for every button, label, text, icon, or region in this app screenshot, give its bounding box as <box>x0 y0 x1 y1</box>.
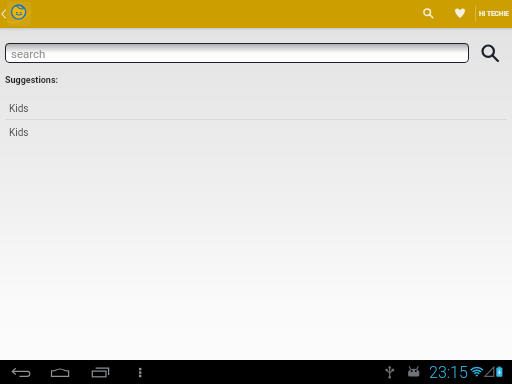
button[interactable]: Home <box>7 2 31 26</box>
staticText: 23:15 <box>429 363 468 382</box>
button[interactable]: HI TECHIE <box>478 0 510 28</box>
button[interactable]: search <box>5 43 469 63</box>
button[interactable]: Home <box>47 360 75 384</box>
staticText: Kids <box>9 127 29 139</box>
button[interactable]: Favourites <box>448 0 471 28</box>
button[interactable]: Navigate up <box>0 0 7 28</box>
button[interactable]: Search <box>415 0 439 28</box>
button[interactable]: Recent apps <box>86 360 114 384</box>
staticText: HI TECHIE <box>479 10 510 18</box>
button[interactable]: More options <box>128 360 152 384</box>
button[interactable]: Back <box>6 360 34 384</box>
staticText: Suggestions: <box>5 75 59 86</box>
staticText: search <box>11 47 46 60</box>
button[interactable]: Kids <box>0 97 512 121</box>
button[interactable]: Search <box>477 40 503 66</box>
button[interactable]: Kids <box>0 121 512 145</box>
staticText: Kids <box>9 103 29 115</box>
